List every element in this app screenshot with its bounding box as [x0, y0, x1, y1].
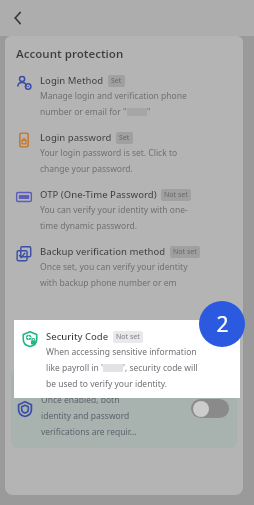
staticText: Security Code	[46, 330, 109, 343]
staticText: Not set	[173, 247, 197, 257]
staticText: Not set	[116, 332, 140, 342]
staticText: time dynamic password.	[40, 220, 138, 232]
button[interactable]: Two-Step Verification toggle	[191, 399, 229, 418]
staticText: OTP (One-Time Password)	[40, 188, 157, 201]
staticText: "	[147, 106, 151, 118]
staticText: Manage login and verification phone	[40, 90, 187, 102]
staticText: When accessing sensitive information	[46, 346, 197, 358]
staticText: Backup verification method	[40, 245, 166, 258]
button[interactable]: Backup verification method	[5, 245, 243, 289]
staticText: like payroll in '	[46, 362, 103, 374]
button[interactable]: Login Method	[5, 74, 243, 118]
button[interactable]: OTP (One-Time Password)	[5, 188, 243, 232]
staticText: with backup phone number or em	[40, 277, 177, 289]
button[interactable]: Step 2	[199, 301, 245, 347]
staticText: be used to verify your identity.	[46, 378, 168, 390]
staticText: Two-Step Verification	[41, 378, 138, 391]
button[interactable]: Login password	[5, 131, 243, 175]
staticText: verifications are requir…	[41, 426, 137, 438]
staticText: Set	[119, 133, 130, 143]
staticText: Once enabled, both	[41, 394, 120, 406]
staticText: Account protection	[16, 46, 124, 62]
staticText: Login Method	[40, 74, 104, 87]
staticText: 2	[216, 310, 229, 339]
button[interactable]: Security Code	[14, 320, 240, 398]
staticText: ', security code will	[123, 362, 198, 374]
staticText: Login password	[40, 131, 112, 144]
staticText: Your login password is set. Click to	[40, 147, 178, 159]
staticText: change your password.	[40, 163, 133, 175]
button[interactable]: Two-Step Verification	[11, 369, 237, 448]
staticText: Not set	[164, 190, 188, 200]
staticText: number or email for "	[40, 106, 127, 118]
staticText: Once set, you can verify your identity	[40, 261, 188, 273]
staticText: identity and password	[41, 410, 130, 422]
staticText: You can verify your identity with one-	[40, 204, 188, 216]
button[interactable]: Back	[4, 4, 32, 32]
staticText: Set	[111, 76, 122, 86]
